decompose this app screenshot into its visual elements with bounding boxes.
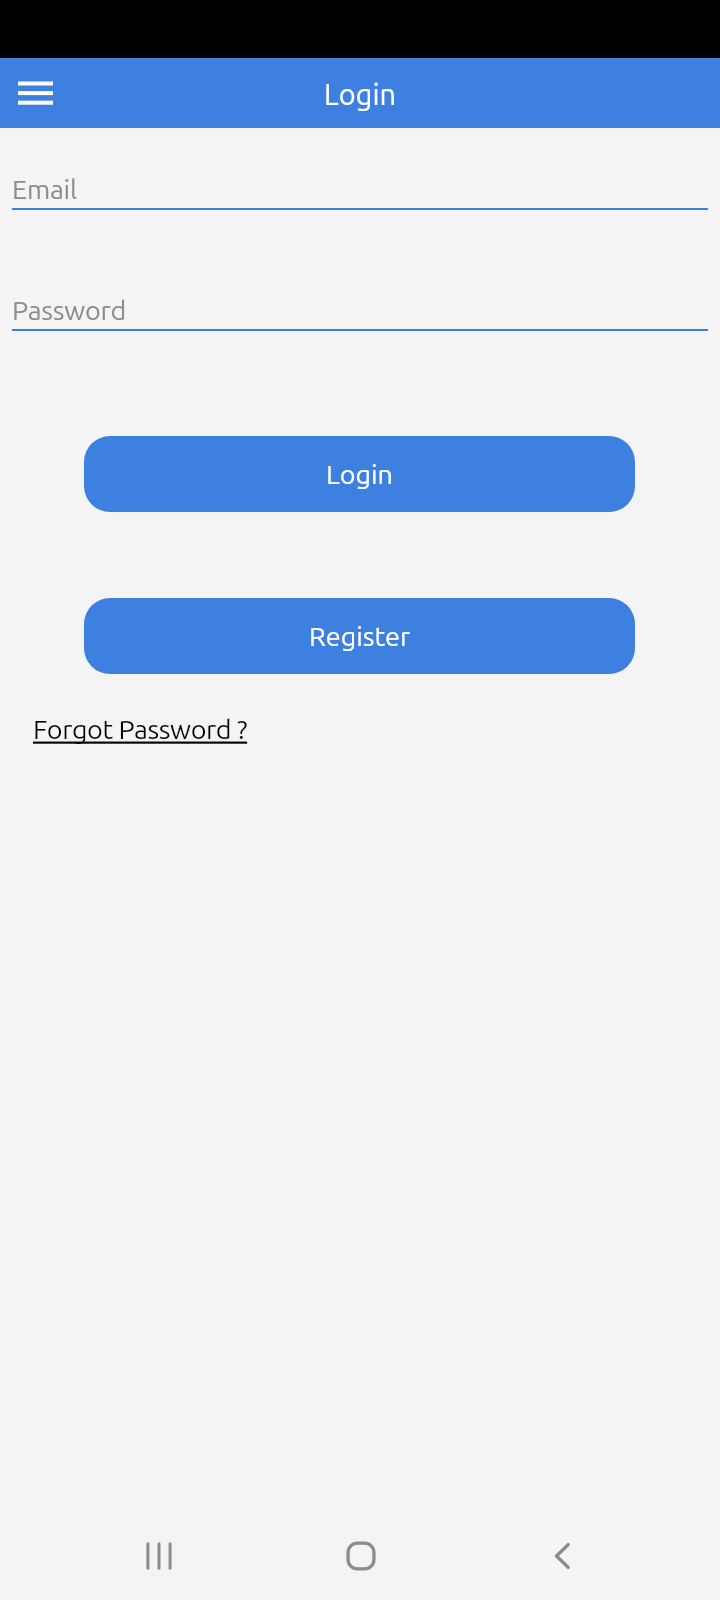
button[interactable]: Password	[12, 285, 708, 331]
button[interactable]: Home	[325, 1520, 397, 1592]
button[interactable]: Forgot Password ?	[32, 712, 249, 746]
button[interactable]: Login	[84, 436, 635, 512]
button[interactable]: Back	[526, 1520, 598, 1592]
staticText: Login	[326, 459, 394, 489]
staticText: Register	[309, 621, 411, 651]
button[interactable]: Recent apps	[123, 1520, 195, 1592]
button[interactable]: Register	[84, 598, 635, 674]
staticText: Forgot Password ?	[33, 714, 248, 744]
staticText: Password	[12, 295, 126, 325]
button[interactable]: Email	[12, 164, 708, 210]
button[interactable]: Open navigation drawer	[1, 58, 69, 128]
staticText: Login	[324, 78, 397, 111]
staticText: Email	[12, 174, 77, 204]
